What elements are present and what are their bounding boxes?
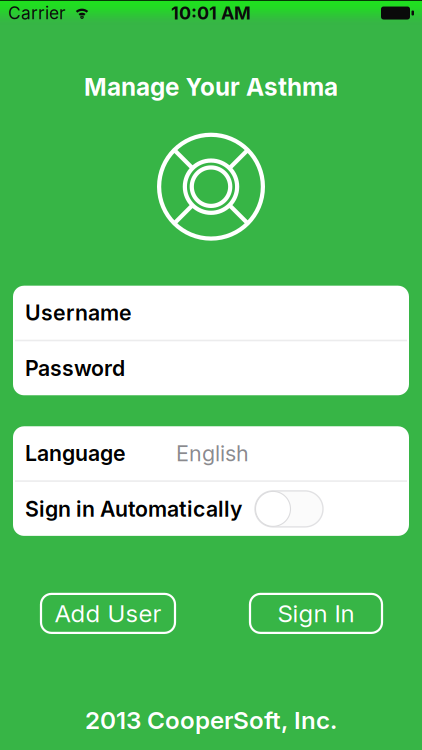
- staticText: Password: [25, 355, 125, 381]
- staticText: Sign in Automatically: [25, 496, 242, 522]
- button[interactable]: Sign in Automatically: [13, 482, 409, 536]
- staticText: 10:01 AM: [171, 2, 251, 24]
- staticText: English: [176, 440, 249, 466]
- button[interactable]: Sign In: [250, 594, 382, 633]
- button[interactable]: Username: [13, 286, 409, 340]
- button[interactable]: Add User: [41, 594, 175, 633]
- button[interactable]: Password: [13, 341, 409, 395]
- staticText: 2013 CooperSoft, Inc.: [85, 705, 337, 735]
- staticText: Add User: [54, 599, 161, 628]
- button[interactable]: Language: [13, 426, 409, 480]
- staticText: Manage Your Asthma: [84, 72, 338, 102]
- staticText: Carrier: [8, 2, 66, 23]
- staticText: Sign In: [277, 599, 354, 628]
- staticText: Username: [25, 300, 132, 326]
- staticText: Language: [25, 440, 126, 466]
